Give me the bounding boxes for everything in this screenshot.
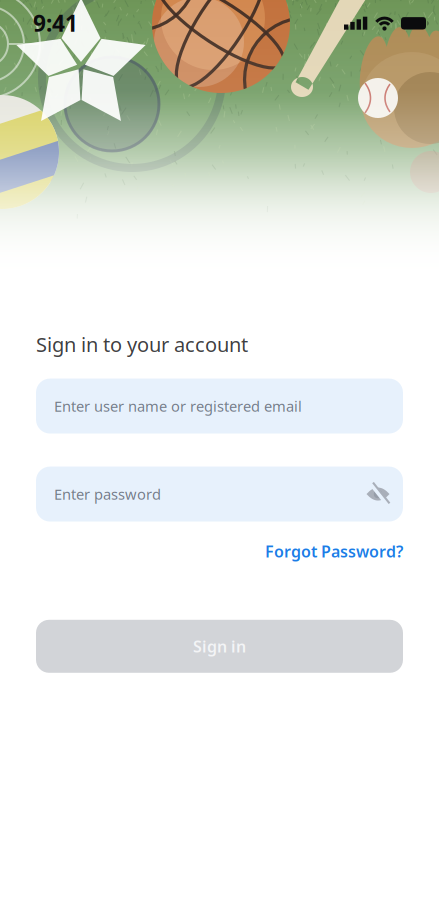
button[interactable]: Forgot Password?: [265, 541, 403, 562]
staticText: 9:41: [33, 8, 78, 38]
staticText: Enter user name or registered email: [54, 396, 302, 416]
staticText: Sign in to your account: [36, 331, 248, 358]
staticText: Sign in: [193, 636, 246, 657]
button[interactable]: Enter user name or registered email: [36, 379, 403, 434]
button[interactable]: Enter password: [36, 467, 403, 522]
button[interactable]: Show password: [366, 485, 403, 504]
staticText: Forgot Password?: [265, 541, 403, 562]
button[interactable]: Sign in: [36, 620, 403, 673]
staticText: Enter password: [54, 484, 161, 504]
